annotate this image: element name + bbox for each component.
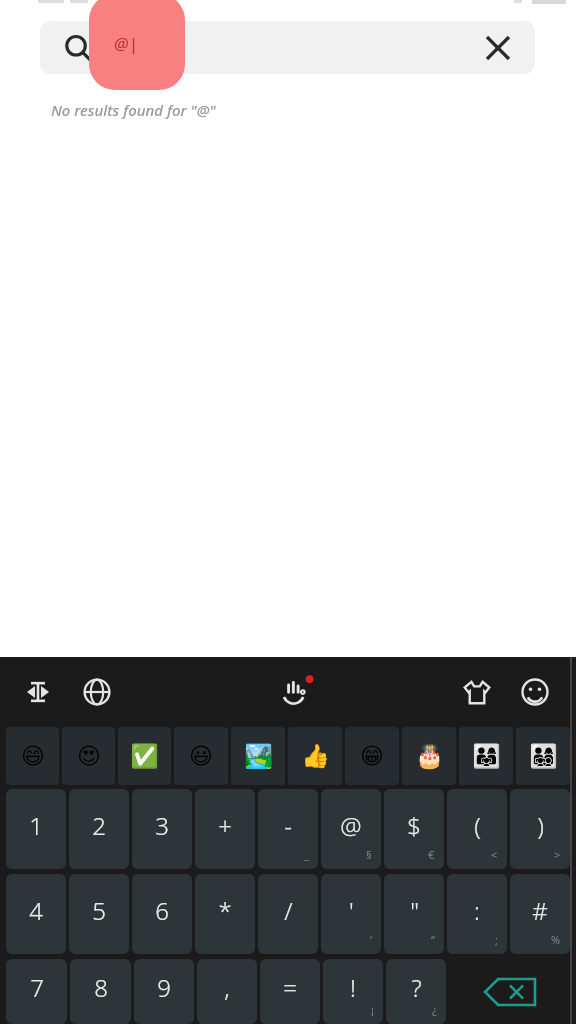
staticText: ‘ bbox=[370, 932, 372, 947]
button[interactable]: 🎂 bbox=[402, 727, 456, 785]
staticText: § bbox=[366, 847, 372, 862]
staticText: - bbox=[284, 809, 292, 842]
staticText: 5 bbox=[92, 894, 106, 927]
staticText: , bbox=[224, 971, 230, 1004]
staticText: € bbox=[428, 847, 435, 862]
staticText: 👨‍👩‍👧 bbox=[472, 743, 501, 770]
staticText: 4 bbox=[29, 894, 43, 927]
button[interactable]: 😍 bbox=[62, 727, 115, 785]
staticText: 👍 bbox=[301, 743, 330, 770]
staticText: 🏞 bbox=[244, 743, 273, 770]
button[interactable]: - bbox=[258, 789, 318, 869]
staticText: / bbox=[284, 894, 293, 927]
button[interactable]: : bbox=[447, 874, 507, 954]
staticText: ( bbox=[474, 809, 481, 842]
button[interactable]: Backspace bbox=[449, 959, 570, 1024]
staticText: @ bbox=[340, 809, 362, 842]
button[interactable]: 😃 bbox=[174, 727, 228, 785]
button[interactable]: 3 bbox=[132, 789, 192, 869]
button[interactable]: 😄 bbox=[6, 727, 59, 785]
staticText: % bbox=[551, 932, 561, 947]
staticText: “ bbox=[431, 932, 435, 947]
button[interactable]: 😁 bbox=[345, 727, 399, 785]
button[interactable]: @ bbox=[321, 789, 381, 869]
button[interactable]: # bbox=[510, 874, 570, 954]
button[interactable]: 2 bbox=[69, 789, 129, 869]
button[interactable]: 4 bbox=[6, 874, 66, 954]
staticText: 6 bbox=[155, 894, 169, 927]
staticText: 3 bbox=[155, 809, 169, 842]
staticText: < bbox=[491, 847, 498, 862]
button[interactable]: Emoji bbox=[514, 671, 556, 713]
staticText: 8 bbox=[94, 971, 108, 1004]
button[interactable]: + bbox=[195, 789, 255, 869]
staticText: + bbox=[218, 809, 232, 842]
button[interactable]: Themes bbox=[456, 671, 498, 713]
staticText: # bbox=[532, 894, 548, 927]
staticText: @| bbox=[114, 32, 138, 55]
staticText: 😁 bbox=[360, 743, 384, 770]
staticText: _ bbox=[304, 847, 309, 862]
button[interactable]: ( bbox=[447, 789, 507, 869]
button[interactable]: Text cursor control bbox=[18, 672, 58, 712]
button[interactable]: Clear search bbox=[483, 33, 513, 63]
button[interactable]: ? bbox=[386, 959, 446, 1024]
staticText: ✅ bbox=[130, 743, 159, 770]
button[interactable]: Keyboard menu bbox=[272, 668, 320, 716]
button[interactable]: 7 bbox=[6, 959, 67, 1024]
staticText: > bbox=[554, 847, 561, 862]
button[interactable]: 8 bbox=[70, 959, 131, 1024]
button[interactable]: ! bbox=[323, 959, 383, 1024]
staticText: 1 bbox=[29, 809, 43, 842]
staticText: * bbox=[218, 894, 232, 927]
staticText: = bbox=[283, 971, 297, 1004]
staticText: ) bbox=[537, 809, 544, 842]
button[interactable]: 6 bbox=[132, 874, 192, 954]
button[interactable]: 1 bbox=[6, 789, 66, 869]
button[interactable]: / bbox=[258, 874, 318, 954]
staticText: ! bbox=[350, 971, 356, 1004]
button[interactable]: ) bbox=[510, 789, 570, 869]
button[interactable]: 👨‍👩‍👧 bbox=[459, 727, 513, 785]
staticText: ? bbox=[411, 971, 422, 1004]
staticText: 2 bbox=[92, 809, 106, 842]
other: Search bbox=[64, 34, 92, 62]
button[interactable]: $ bbox=[384, 789, 444, 869]
staticText: ' bbox=[349, 894, 354, 927]
button[interactable]: 🏞 bbox=[231, 727, 285, 785]
staticText: 7 bbox=[30, 971, 44, 1004]
button[interactable]: , bbox=[197, 959, 257, 1024]
button[interactable]: 9 bbox=[134, 959, 194, 1024]
staticText: ¡ bbox=[371, 1002, 374, 1017]
button[interactable]: ' bbox=[321, 874, 381, 954]
staticText: 😃 bbox=[189, 743, 213, 770]
staticText: 🎂 bbox=[415, 743, 444, 770]
staticText: 😍 bbox=[77, 743, 101, 770]
button[interactable]: 👍 bbox=[288, 727, 342, 785]
staticText: ¿ bbox=[432, 1002, 437, 1017]
staticText: " bbox=[410, 894, 419, 927]
button[interactable]: Switch language bbox=[76, 671, 118, 713]
button[interactable]: 5 bbox=[69, 874, 129, 954]
staticText: 👨‍👩‍👧‍👦 bbox=[529, 743, 558, 770]
staticText: No results found for "@" bbox=[51, 100, 216, 120]
button[interactable]: = bbox=[260, 959, 320, 1024]
staticText: 9 bbox=[157, 971, 171, 1004]
staticText: : bbox=[474, 894, 480, 927]
staticText: 😄 bbox=[21, 743, 45, 770]
button[interactable]: " bbox=[384, 874, 444, 954]
button[interactable]: * bbox=[195, 874, 255, 954]
staticText: $ bbox=[407, 809, 421, 842]
staticText: ; bbox=[495, 932, 498, 947]
button[interactable]: Search bbox=[40, 21, 535, 74]
button[interactable]: 👨‍👩‍👧‍👦 bbox=[516, 727, 570, 785]
button[interactable]: ✅ bbox=[118, 727, 171, 785]
